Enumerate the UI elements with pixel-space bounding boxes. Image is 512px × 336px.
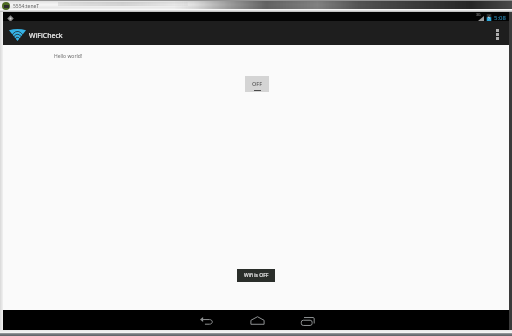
staticText: 5554:teneT: [13, 3, 40, 10]
staticText: OFF: [252, 80, 263, 87]
staticText: 3G: [476, 12, 481, 17]
button[interactable]: OFF: [245, 76, 269, 92]
staticText: Wifi is OFF: [244, 272, 269, 279]
button[interactable]: More options: [486, 22, 508, 46]
button[interactable]: Recent apps: [293, 310, 324, 330]
button[interactable]: Back: [191, 310, 222, 330]
button[interactable]: Home: [242, 310, 273, 330]
staticText: Hello world!: [54, 53, 83, 60]
staticText: 5:08: [494, 14, 506, 22]
staticText: WiFiCheck: [29, 31, 63, 41]
